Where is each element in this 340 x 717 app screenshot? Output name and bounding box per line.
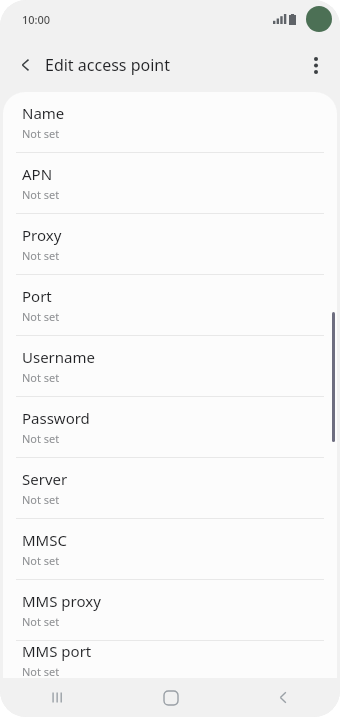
staticText: Not set: [22, 553, 60, 568]
button[interactable]: Proxy: [3, 213, 337, 274]
staticText: MMSC: [22, 530, 67, 550]
staticText: Not set: [22, 309, 60, 324]
staticText: Not set: [22, 664, 60, 678]
button[interactable]: Password: [3, 396, 337, 457]
button[interactable]: More options: [298, 47, 334, 83]
button[interactable]: MMSC: [3, 518, 337, 579]
button[interactable]: Username: [3, 335, 337, 396]
staticText: MMS port: [22, 641, 92, 661]
staticText: Not set: [22, 614, 60, 629]
staticText: Edit access point: [45, 54, 170, 76]
staticText: Not set: [22, 187, 60, 202]
staticText: Server: [22, 469, 68, 489]
staticText: Not set: [22, 492, 60, 507]
staticText: Proxy: [22, 225, 62, 245]
button[interactable]: Port: [3, 274, 337, 335]
staticText: Password: [22, 408, 90, 428]
staticText: Username: [22, 347, 95, 367]
staticText: Not set: [22, 126, 60, 141]
button[interactable]: MMS port: [3, 640, 337, 678]
button[interactable]: Back: [8, 47, 44, 83]
staticText: 10:00: [22, 12, 51, 27]
button[interactable]: Name: [3, 92, 337, 152]
button[interactable]: Server: [3, 457, 337, 518]
button[interactable]: APN: [3, 152, 337, 213]
button[interactable]: Back: [227, 678, 340, 717]
staticText: APN: [22, 164, 53, 184]
button[interactable]: Home: [114, 678, 227, 717]
staticText: Not set: [22, 431, 60, 446]
staticText: Not set: [22, 248, 60, 263]
staticText: Not set: [22, 370, 60, 385]
staticText: MMS proxy: [22, 591, 101, 611]
staticText: Name: [22, 103, 65, 123]
button[interactable]: Recent apps: [0, 678, 114, 717]
button[interactable]: MMS proxy: [3, 579, 337, 640]
staticText: Port: [22, 286, 52, 306]
